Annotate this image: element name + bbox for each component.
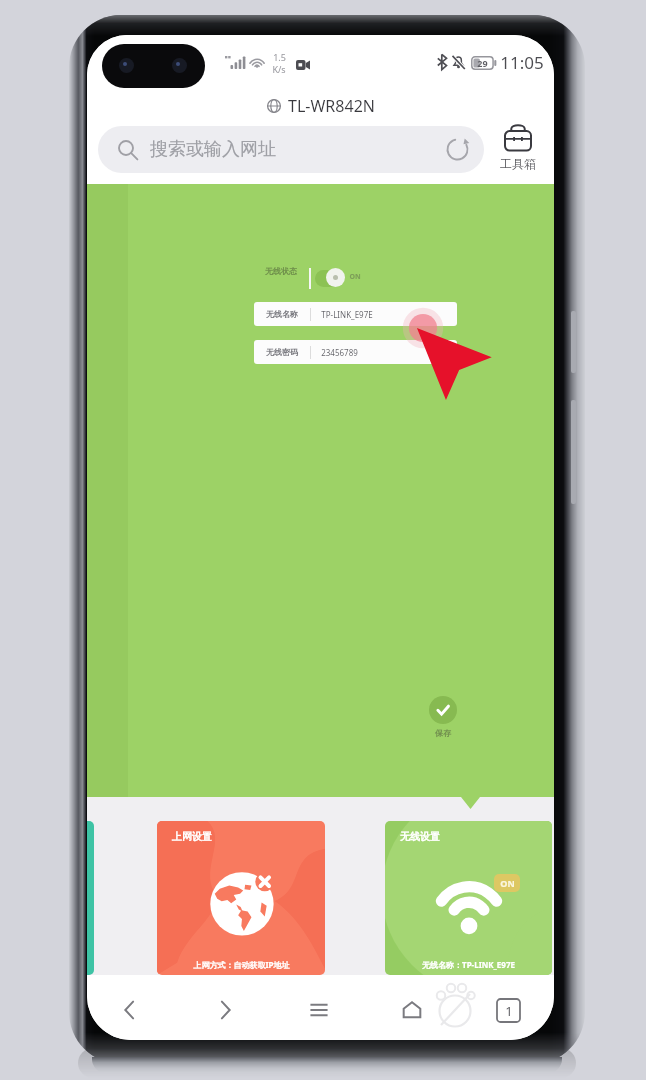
button[interactable]: 上网设置 — [157, 821, 325, 975]
button[interactable]: Menu — [301, 992, 337, 1028]
staticText: 29 — [477, 57, 488, 69]
button[interactable]: Wireless on toggle — [315, 270, 342, 287]
button[interactable]: Back — [112, 992, 148, 1028]
button[interactable]: Tabs — [490, 992, 526, 1028]
button[interactable]: 工具箱 — [493, 123, 543, 171]
staticText: 1.5 — [273, 51, 286, 63]
staticText: 无线名称 — [266, 309, 298, 319]
staticText: TL-WR842N — [288, 95, 375, 117]
button[interactable]: 搜索或输入网址 — [98, 126, 484, 173]
staticText: ON — [500, 877, 515, 889]
staticText: 搜索或输入网址 — [150, 138, 276, 161]
button[interactable]: Forward — [207, 992, 243, 1028]
staticText: 无线名称：TP-LINK_E97E — [422, 959, 515, 970]
staticText: 11:05 — [500, 51, 544, 74]
button[interactable]: 无线密码 — [254, 340, 457, 364]
staticText: TP-LINK_E97E — [321, 309, 373, 320]
staticText: 保存 — [435, 728, 451, 738]
button[interactable]: Previous card — [87, 821, 94, 975]
staticText: 上网设置 — [172, 830, 212, 843]
staticText: 23456789 — [321, 347, 358, 358]
staticText: K/s — [272, 63, 286, 75]
button[interactable]: 保存 — [428, 696, 458, 738]
staticText: 无线状态 — [265, 266, 297, 276]
button[interactable]: 无线名称 — [254, 302, 457, 326]
staticText: 上网方式：自动获取IP地址 — [193, 959, 290, 970]
staticText: ON — [349, 272, 361, 282]
staticText: 无线密码 — [266, 347, 298, 357]
button[interactable]: Refresh — [445, 137, 470, 162]
staticText: 无线设置 — [400, 830, 440, 843]
staticText: 工具箱 — [500, 156, 536, 171]
button[interactable]: 无线设置 — [385, 821, 552, 975]
staticText: 1 — [505, 1002, 513, 1020]
button[interactable]: Home — [394, 992, 430, 1028]
